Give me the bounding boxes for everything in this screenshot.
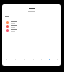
button[interactable]: Tab 6: [53, 55, 61, 63]
button[interactable]: [2, 20, 61, 24]
button[interactable]: Tab 2: [20, 55, 29, 63]
button[interactable]: [2, 28, 61, 32]
button[interactable]: Tab 0: [2, 55, 11, 63]
button[interactable]: Tab 5: [45, 55, 53, 63]
button[interactable]: Tab 3: [29, 55, 37, 63]
button[interactable]: Tab 1: [11, 55, 20, 63]
button[interactable]: [2, 24, 61, 28]
button[interactable]: Tab 4: [37, 55, 45, 63]
